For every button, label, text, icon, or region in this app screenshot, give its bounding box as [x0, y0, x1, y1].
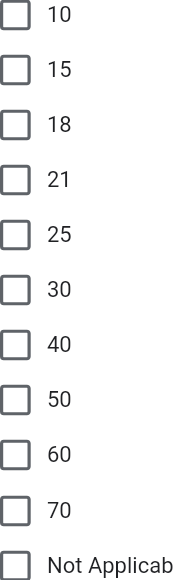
- other: 25 checkbox, not checked: [0, 218, 34, 252]
- other: 50 checkbox, not checked: [0, 383, 34, 417]
- button[interactable]: 40 checkbox, not checked: [0, 317, 174, 372]
- other: Not Applicable checkbox, not checked: [0, 549, 34, 580]
- staticText: 50: [47, 387, 72, 413]
- button[interactable]: 21 checkbox, not checked: [0, 152, 174, 207]
- staticText: 40: [47, 332, 72, 358]
- button[interactable]: 25 checkbox, not checked: [0, 207, 174, 262]
- staticText: 60: [47, 442, 72, 468]
- staticText: 70: [47, 498, 72, 524]
- button[interactable]: 30 checkbox, not checked: [0, 262, 174, 317]
- staticText: 15: [47, 57, 72, 83]
- other: 21 checkbox, not checked: [0, 163, 34, 197]
- button[interactable]: 15 checkbox, not checked: [0, 42, 174, 97]
- button[interactable]: Not Applicable checkbox, not checked: [0, 538, 174, 580]
- button[interactable]: 10 checkbox, not checked: [0, 0, 174, 42]
- button[interactable]: 50 checkbox, not checked: [0, 372, 174, 427]
- other: 70 checkbox, not checked: [0, 494, 34, 528]
- staticText: 10: [47, 2, 72, 28]
- staticText: 21: [47, 167, 72, 193]
- staticText: 18: [47, 112, 72, 138]
- staticText: 30: [47, 277, 72, 303]
- other: 60 checkbox, not checked: [0, 438, 34, 472]
- other: 30 checkbox, not checked: [0, 273, 34, 307]
- staticText: 25: [47, 222, 72, 248]
- button[interactable]: 60 checkbox, not checked: [0, 427, 174, 482]
- button[interactable]: 18 checkbox, not checked: [0, 97, 174, 152]
- other: 15 checkbox, not checked: [0, 53, 34, 87]
- other: 40 checkbox, not checked: [0, 328, 34, 362]
- button[interactable]: 70 checkbox, not checked: [0, 483, 174, 538]
- other: 18 checkbox, not checked: [0, 108, 34, 142]
- staticText: Not Applicable: [47, 553, 174, 579]
- other: 10 checkbox, not checked: [0, 0, 34, 32]
